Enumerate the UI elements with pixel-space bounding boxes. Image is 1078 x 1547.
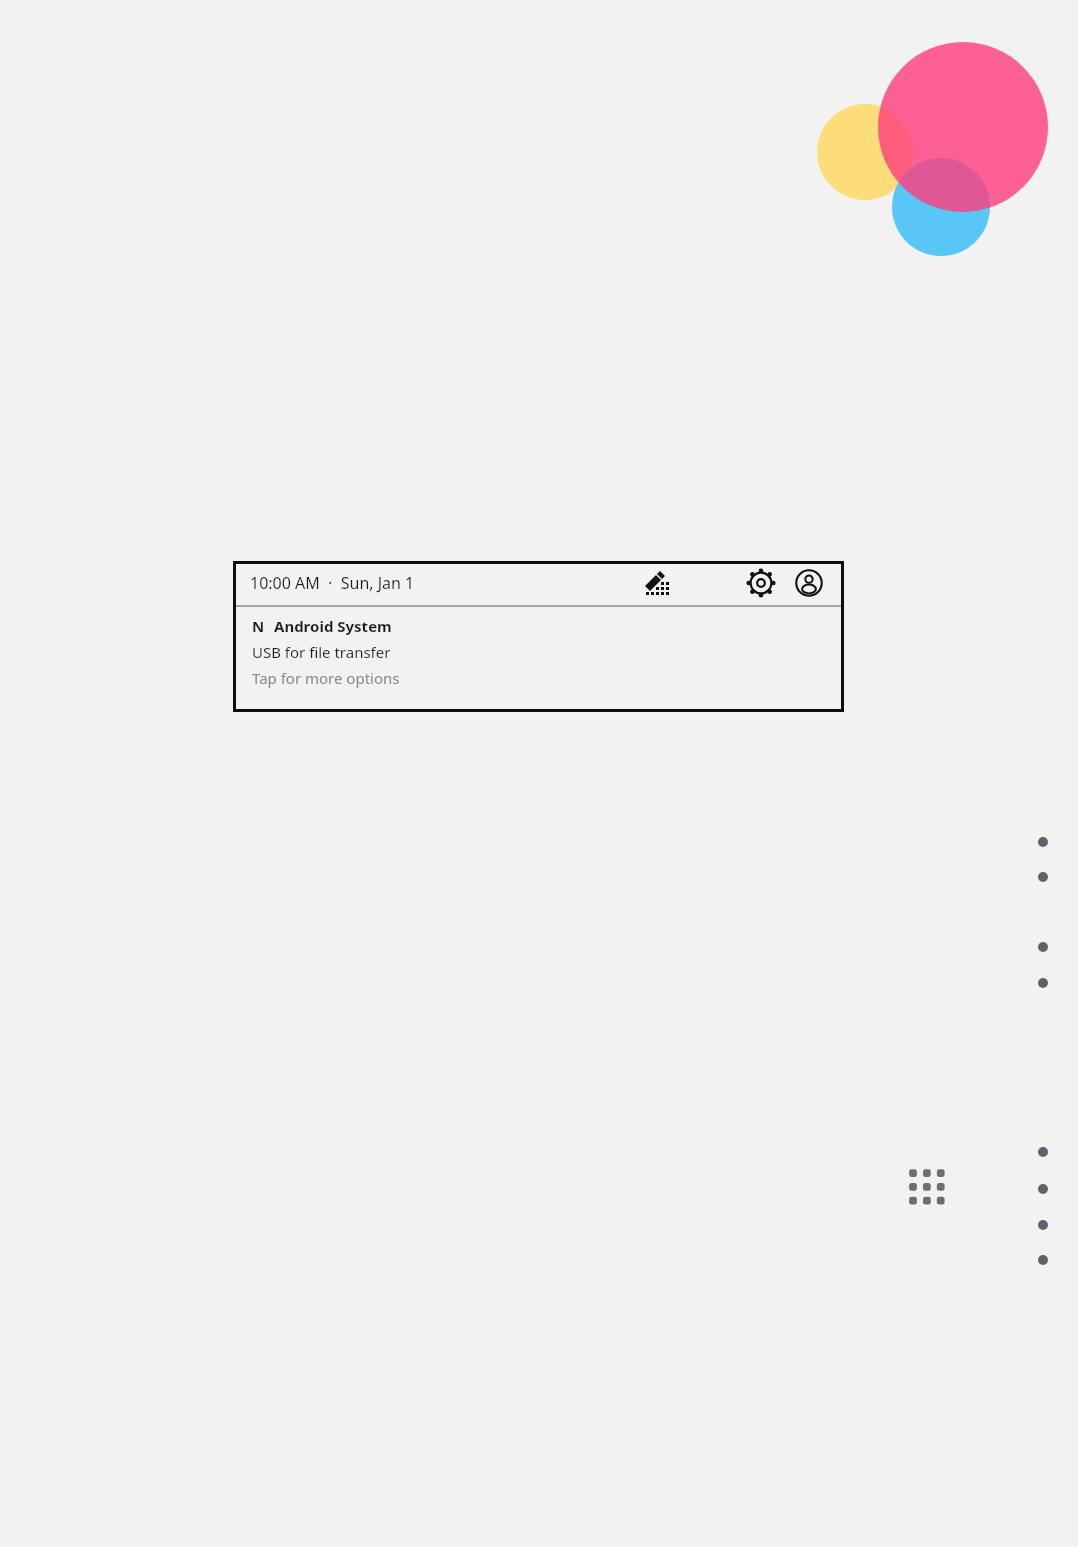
- staticText: N: [252, 616, 265, 636]
- button[interactable]: Settings: [744, 566, 778, 600]
- button[interactable]: Edit: [640, 566, 674, 600]
- staticText: Tap for more options: [252, 668, 400, 688]
- staticText: Android System: [274, 616, 392, 636]
- staticText: 10:00 AM · Sun, Jan 1: [250, 572, 415, 594]
- button[interactable]: Apps: [900, 1160, 946, 1206]
- button[interactable]: Account: [792, 566, 826, 600]
- button[interactable]: N: [233, 607, 844, 712]
- staticText: USB for file transfer: [252, 642, 391, 662]
